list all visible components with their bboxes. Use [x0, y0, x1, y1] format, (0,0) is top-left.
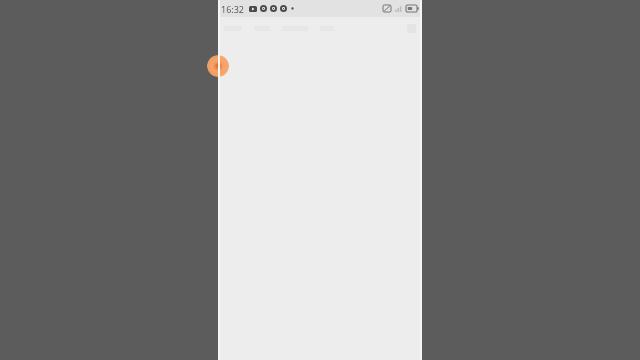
staticText: 16:32	[221, 3, 245, 15]
button[interactable]: Action	[207, 55, 229, 77]
